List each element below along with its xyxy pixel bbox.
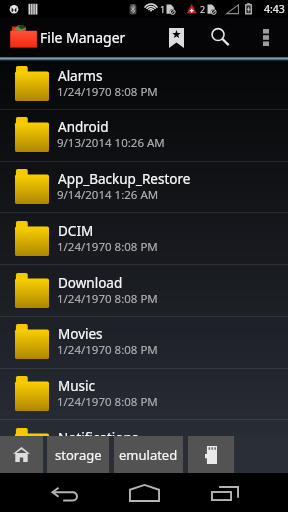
button[interactable]: App_Backup_Restore <box>0 162 288 213</box>
staticText: 9/14/2014 1:26 AM <box>57 187 159 203</box>
staticText: DCIM <box>58 222 94 240</box>
button[interactable]: Search <box>200 18 240 57</box>
staticText: Download <box>58 274 123 292</box>
button[interactable]: Bookmarks <box>156 18 196 57</box>
staticText: Android <box>58 118 109 136</box>
staticText: 1/24/1970 8:08 PM <box>57 342 158 358</box>
staticText: 2 <box>200 3 206 15</box>
staticText: 1 <box>160 3 166 15</box>
staticText: 1/24/1970 8:08 PM <box>57 239 158 255</box>
staticText: App_Backup_Restore <box>58 170 191 188</box>
staticText: emulated <box>119 446 178 464</box>
staticText: File Manager <box>40 28 126 47</box>
staticText: 1/24/1970 8:08 PM <box>57 291 158 307</box>
button[interactable]: More options <box>251 18 281 57</box>
staticText: 4:43 <box>264 2 285 16</box>
button[interactable]: Android <box>0 110 288 161</box>
button[interactable]: Back <box>38 475 90 512</box>
button[interactable]: Home <box>118 473 170 512</box>
staticText: 1/24/1970 8:08 PM <box>57 394 158 410</box>
button[interactable]: Home <box>0 436 43 473</box>
button[interactable]: storage <box>47 436 109 473</box>
staticText: 1/24/1970 8:08 PM <box>57 84 158 100</box>
staticText: Notifications <box>58 429 139 436</box>
staticText: Music <box>58 377 96 395</box>
staticText: Movies <box>58 325 103 343</box>
button[interactable]: Alarms <box>0 59 288 110</box>
button[interactable]: Music <box>0 369 288 420</box>
staticText: 9/13/2014 10:26 AM <box>57 135 165 151</box>
button[interactable]: Notifications <box>0 421 288 436</box>
button[interactable]: Movies <box>0 317 288 368</box>
button[interactable]: Download <box>0 266 288 317</box>
staticText: Alarms <box>58 67 103 85</box>
button[interactable]: Recent apps <box>199 474 251 512</box>
button[interactable]: DCIM <box>0 214 288 265</box>
button[interactable]: emulated <box>114 436 183 473</box>
staticText: storage <box>55 446 102 464</box>
button[interactable]: SD card <box>188 436 234 473</box>
